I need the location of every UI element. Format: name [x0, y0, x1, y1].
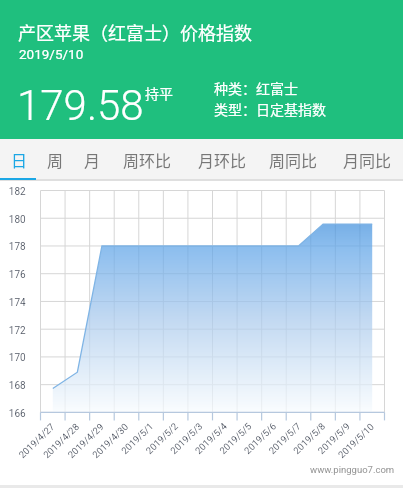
staticText: 种类：红富士 — [214, 78, 298, 98]
staticText: 日 — [11, 148, 28, 171]
staticText: 持平 — [145, 83, 173, 103]
button[interactable]: 月同比 — [334, 139, 400, 179]
button[interactable]: 周同比 — [260, 139, 326, 179]
staticText: 月同比 — [343, 148, 392, 171]
staticText: 2019/5/10 — [19, 46, 84, 62]
staticText: 月环比 — [198, 148, 247, 171]
staticText: 周环比 — [123, 148, 172, 171]
button[interactable]: 月环比 — [189, 139, 255, 179]
button[interactable]: 周 — [38, 139, 72, 179]
staticText: 周 — [47, 148, 64, 171]
staticText: 产区苹果（红富士）价格指数 — [18, 19, 252, 45]
button[interactable]: 月 — [75, 139, 109, 179]
button[interactable]: 周环比 — [114, 139, 180, 179]
button[interactable]: 日 — [2, 139, 36, 179]
staticText: 周同比 — [269, 148, 318, 171]
staticText: 179.58 — [17, 81, 144, 130]
staticText: 类型：日定基指数 — [214, 99, 326, 119]
staticText: 月 — [84, 148, 101, 171]
